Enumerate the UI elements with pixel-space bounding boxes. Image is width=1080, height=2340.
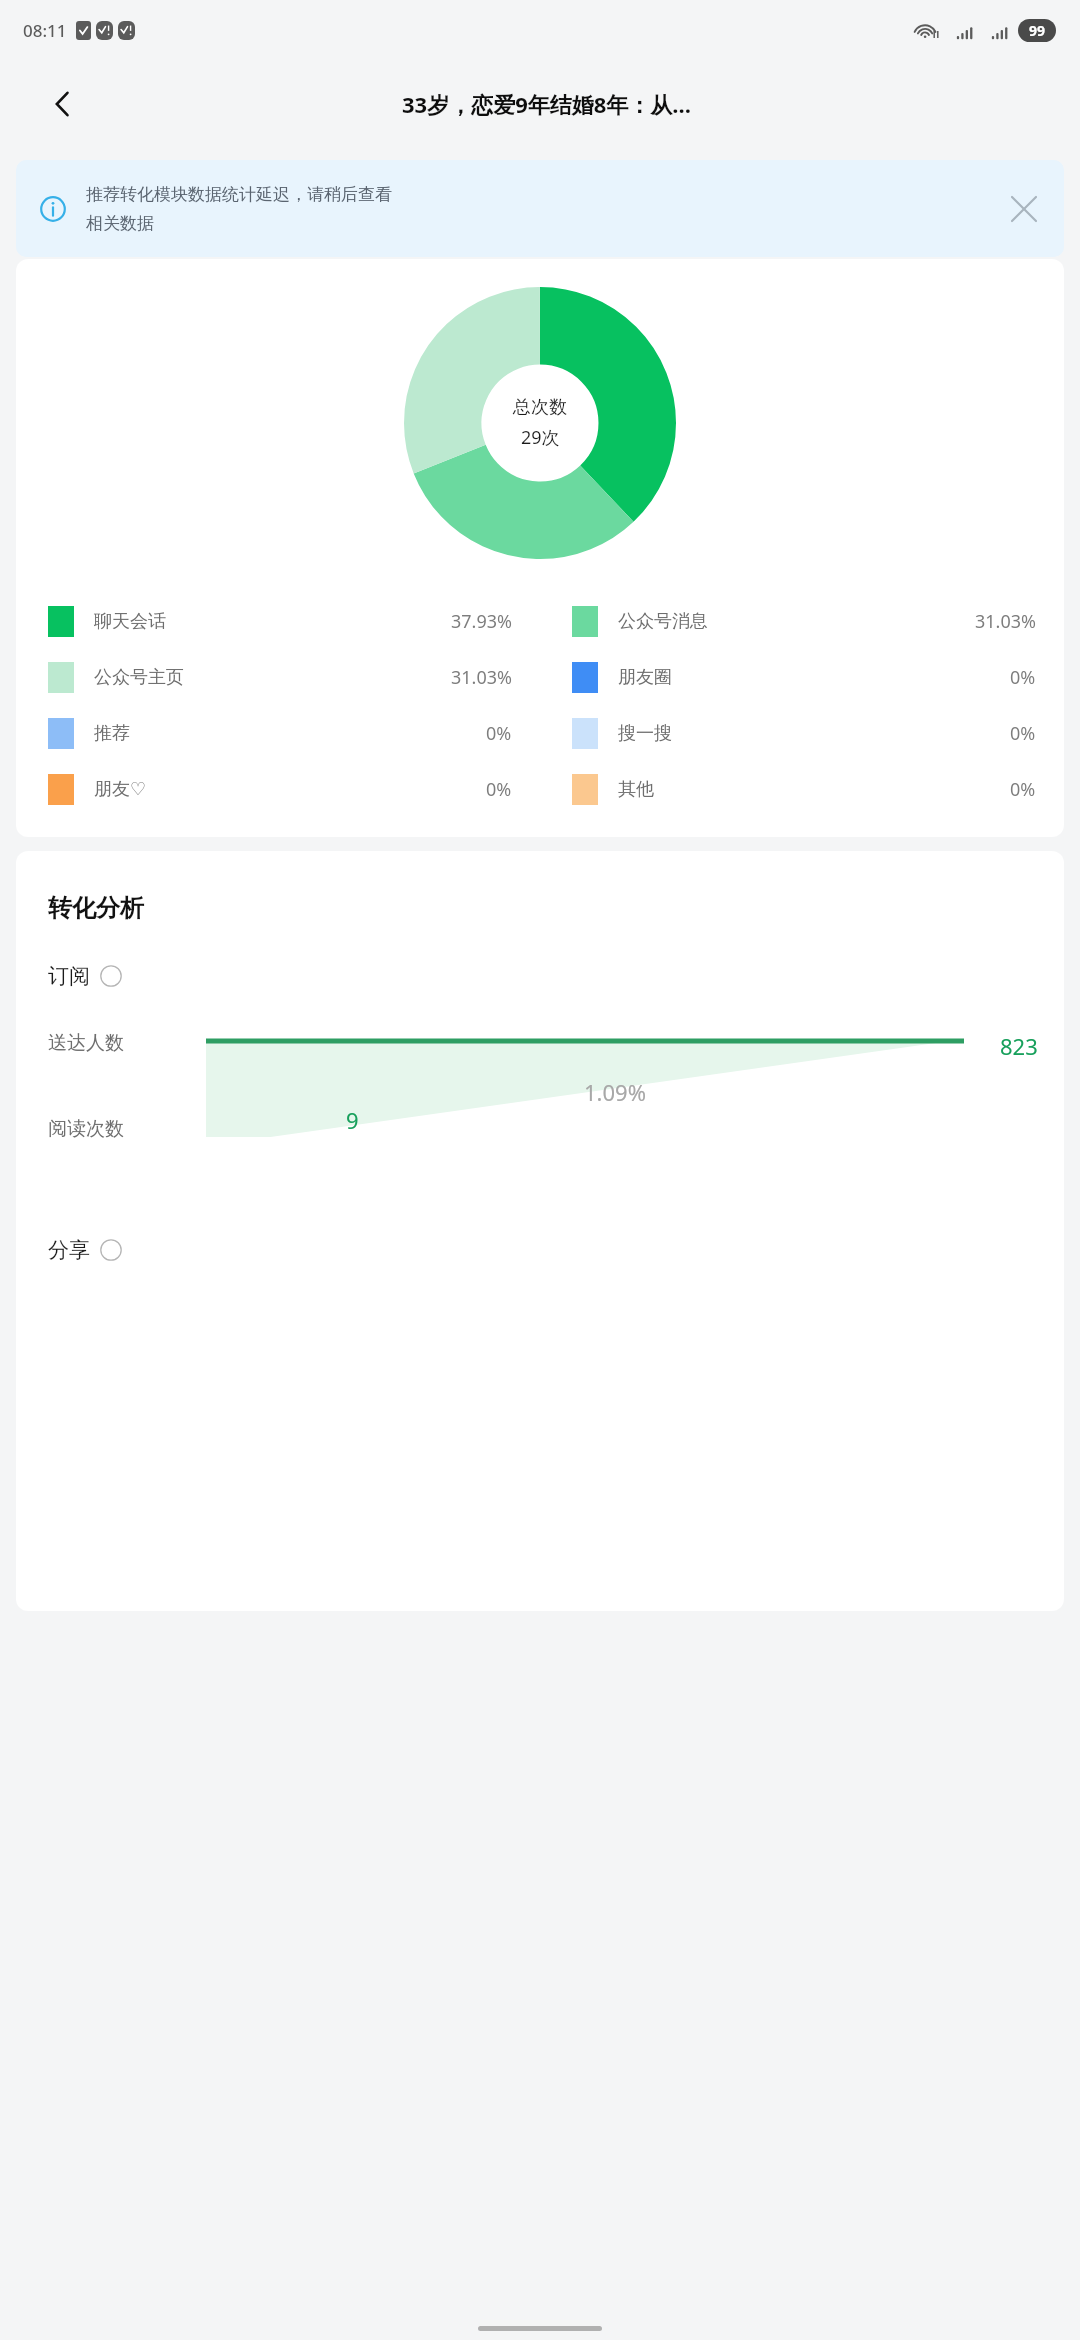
staticText: 朋友♡ bbox=[94, 778, 147, 801]
button[interactable]: 搜一搜 bbox=[540, 705, 1064, 761]
staticText: 9 bbox=[346, 1105, 359, 1135]
button[interactable]: Back bbox=[40, 81, 86, 127]
staticText: 99 bbox=[1029, 21, 1046, 40]
button[interactable]: 聊天会话 bbox=[16, 593, 540, 649]
button[interactable]: 分享 bbox=[48, 1237, 122, 1263]
staticText: 转化分析 bbox=[48, 893, 144, 923]
button[interactable]: 公众号主页 bbox=[16, 649, 540, 705]
button[interactable]: 朋友圈 bbox=[540, 649, 1064, 705]
staticText: 0% bbox=[1010, 777, 1036, 802]
staticText: 29次 bbox=[521, 425, 560, 450]
staticText: 相关数据 bbox=[86, 213, 154, 234]
button[interactable]: 推荐 bbox=[16, 705, 540, 761]
staticText: 送达人数 bbox=[48, 1031, 124, 1055]
staticText: 公众号主页 bbox=[94, 666, 184, 689]
staticText: 阅读次数 bbox=[48, 1117, 124, 1141]
staticText: 其他 bbox=[618, 778, 654, 801]
staticText: 0% bbox=[1010, 721, 1036, 746]
staticText: 33岁，恋爱9年结婚8年：从… bbox=[402, 89, 692, 119]
staticText: 订阅 bbox=[48, 963, 90, 989]
staticText: 0% bbox=[486, 721, 512, 746]
staticText: 1.09% bbox=[584, 1077, 646, 1107]
staticText: 聊天会话 bbox=[94, 610, 166, 633]
staticText: 分享 bbox=[48, 1237, 90, 1263]
staticText: 朋友圈 bbox=[618, 666, 672, 689]
staticText: 31.03% bbox=[975, 609, 1036, 634]
staticText: 总次数 bbox=[513, 396, 567, 419]
button[interactable]: 其他 bbox=[540, 761, 1064, 817]
button[interactable]: 公众号消息 bbox=[540, 593, 1064, 649]
staticText: 搜一搜 bbox=[618, 722, 672, 745]
staticText: 08:11 bbox=[23, 19, 67, 42]
button[interactable]: Close bbox=[1002, 187, 1046, 231]
staticText: 推荐转化模块数据统计延迟，请稍后查看 bbox=[86, 184, 392, 205]
staticText: 公众号消息 bbox=[618, 610, 708, 633]
button[interactable]: 订阅 bbox=[48, 963, 122, 989]
staticText: 31.03% bbox=[451, 665, 512, 690]
staticText: 37.93% bbox=[451, 609, 512, 634]
staticText: 0% bbox=[1010, 665, 1036, 690]
staticText: 推荐 bbox=[94, 722, 130, 745]
button[interactable]: 朋友♡ bbox=[16, 761, 540, 817]
staticText: 0% bbox=[486, 777, 512, 802]
staticText: 823 bbox=[1000, 1031, 1038, 1061]
